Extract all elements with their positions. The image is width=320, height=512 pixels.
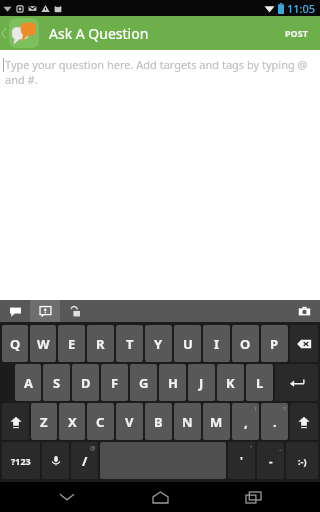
button[interactable]: Q (2, 325, 28, 362)
staticText: R (96, 335, 105, 353)
button[interactable]: U (174, 325, 201, 362)
staticText: S (53, 374, 61, 392)
staticText: Z (40, 413, 48, 431)
staticText: . (273, 413, 277, 431)
button[interactable]: Voice input (42, 442, 69, 479)
button[interactable]: N (174, 403, 201, 440)
staticText: V (125, 413, 134, 431)
staticText: P (270, 335, 279, 353)
staticText: C (96, 413, 105, 431)
button[interactable]: Camera (288, 300, 320, 322)
staticText: @ (90, 444, 96, 452)
staticText: G (139, 374, 149, 392)
button[interactable]: Help (30, 300, 60, 322)
button[interactable]: - (257, 442, 284, 479)
staticText: W (37, 335, 50, 353)
staticText: ' (240, 453, 243, 468)
button[interactable]: Shift (290, 403, 318, 440)
staticText: Y (154, 335, 163, 353)
button[interactable]: O (232, 325, 259, 362)
button[interactable]: A (15, 364, 41, 401)
button[interactable]: . (261, 403, 288, 440)
staticText: Q (10, 335, 21, 353)
staticText: , (244, 413, 248, 431)
button[interactable]: Navigate up (0, 18, 41, 48)
button[interactable]: Hide keyboard (41, 482, 93, 512)
staticText: N (182, 413, 193, 431)
staticText: E (68, 335, 76, 353)
staticText: POST (285, 27, 308, 39)
staticText: - (269, 453, 273, 468)
button[interactable]: Shift (2, 403, 29, 440)
staticText: B (154, 413, 163, 431)
button[interactable]: ?123 (2, 442, 40, 479)
staticText: 11:05 (287, 1, 316, 16)
staticText: F (111, 374, 119, 392)
button[interactable]: Enter (275, 364, 318, 401)
button[interactable]: I (203, 325, 230, 362)
staticText: Type your question here. Add targets and… (5, 57, 320, 87)
button[interactable]: Y (145, 325, 172, 362)
staticText: ! (255, 405, 257, 413)
staticText: X (68, 413, 77, 431)
staticText: T (126, 335, 134, 353)
staticText: M (210, 413, 223, 431)
staticText: O (240, 335, 251, 353)
button[interactable]: / (71, 442, 98, 479)
button[interactable]: T (116, 325, 143, 362)
button[interactable]: POST (273, 16, 320, 50)
staticText: D (81, 374, 91, 392)
button[interactable]: Backspace (290, 325, 318, 362)
staticText: A (24, 374, 33, 392)
staticText: Ask A Question (49, 24, 149, 43)
button[interactable]: M (203, 403, 230, 440)
staticText: J (199, 374, 204, 392)
button[interactable]: F (101, 364, 128, 401)
button[interactable]: ' (228, 442, 255, 479)
button[interactable]: Recent apps (227, 482, 279, 512)
button[interactable]: W (30, 325, 56, 362)
button[interactable]: D (72, 364, 99, 401)
button[interactable]: Home (134, 482, 186, 512)
staticText: I (214, 335, 220, 353)
staticText: L (256, 374, 264, 392)
button[interactable]: K (217, 364, 244, 401)
staticText: ? (283, 405, 286, 413)
button[interactable]: G (130, 364, 157, 401)
staticText: K (226, 374, 235, 392)
button[interactable]: :-) (286, 442, 318, 479)
staticText: ?123 (11, 455, 31, 467)
button[interactable]: B (145, 403, 172, 440)
staticText: _ (279, 444, 282, 452)
staticText: / (82, 452, 88, 470)
staticText: U (183, 335, 193, 353)
button[interactable]: C (87, 403, 114, 440)
button[interactable]: , (232, 403, 259, 440)
staticText: :-) (298, 455, 307, 467)
button[interactable]: Messages (0, 300, 30, 322)
button[interactable]: H (159, 364, 186, 401)
button[interactable]: X (59, 403, 85, 440)
button[interactable]: V (116, 403, 143, 440)
button[interactable]: S (43, 364, 70, 401)
staticText: H (168, 374, 178, 392)
button[interactable]: R (87, 325, 114, 362)
button[interactable]: P (261, 325, 288, 362)
button[interactable]: E (58, 325, 85, 362)
button[interactable]: L (246, 364, 273, 401)
staticText: " (250, 444, 253, 452)
button[interactable]: Privacy (60, 300, 90, 322)
button[interactable]: Z (31, 403, 57, 440)
button[interactable]: J (188, 364, 215, 401)
